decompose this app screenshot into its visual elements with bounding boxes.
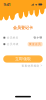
staticText: 立即领取 xyxy=(15,57,31,61)
button[interactable]: 查看使用规则 > xyxy=(0,63,46,67)
staticText: 9:41 xyxy=(3,2,10,7)
staticText: 黄金会员 xyxy=(29,42,41,46)
button[interactable]: 立即领取 xyxy=(3,55,43,63)
staticText: 会员姓名 xyxy=(7,36,19,39)
staticText: 会员登记卡 xyxy=(13,25,33,30)
staticText: 张小明 xyxy=(34,36,43,39)
staticText: 会员等级 xyxy=(7,42,19,46)
staticText: 查看使用规则 > xyxy=(22,64,43,67)
